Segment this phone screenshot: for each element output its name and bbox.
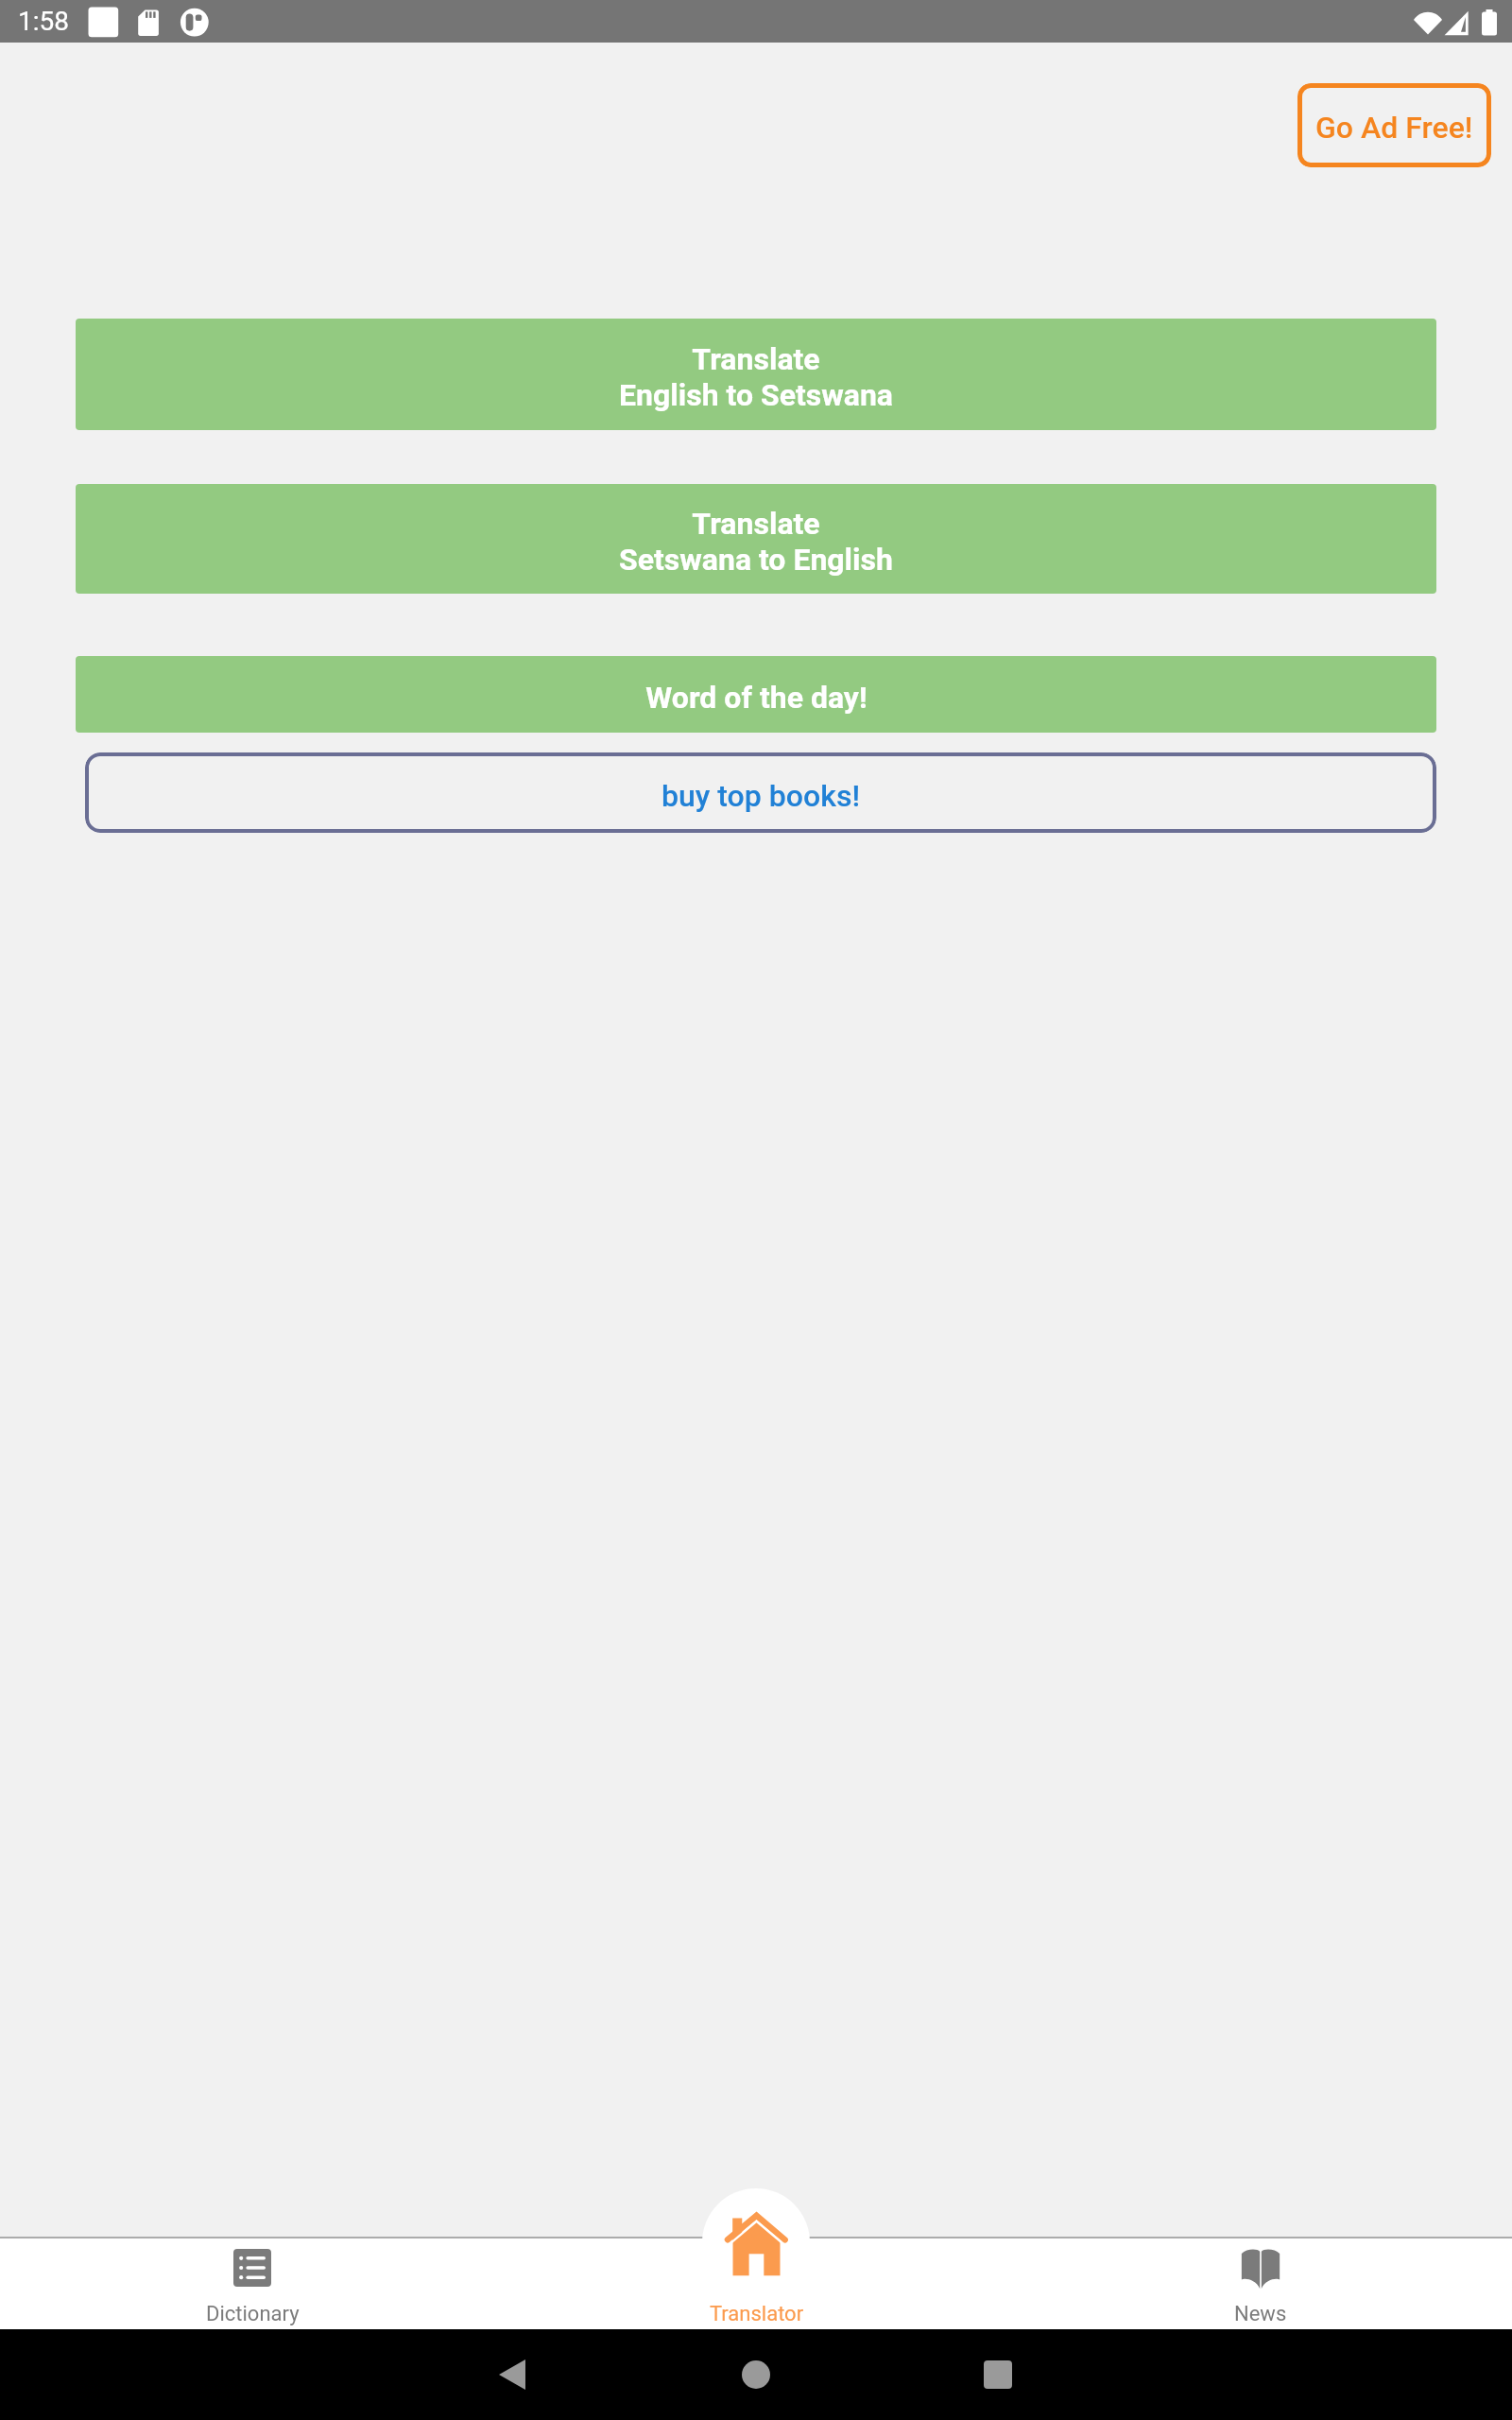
staticText: 1:58 bbox=[18, 6, 69, 37]
button[interactable]: News bbox=[1008, 2237, 1512, 2329]
staticText: News bbox=[1234, 2302, 1287, 2326]
button[interactable]: Go Ad Free! bbox=[1297, 83, 1491, 167]
staticText: Translate Setswana to English bbox=[619, 506, 893, 578]
staticText: buy top books! bbox=[661, 778, 860, 814]
staticText: Word of the day! bbox=[645, 680, 868, 716]
button[interactable]: Translator bbox=[702, 2188, 810, 2296]
button[interactable]: Translator bbox=[505, 2237, 1008, 2329]
button[interactable]: Translate Setswana to English bbox=[76, 484, 1436, 594]
staticText: Dictionary bbox=[206, 2302, 300, 2326]
staticText: Go Ad Free! bbox=[1315, 110, 1473, 146]
button[interactable]: Word of the day! bbox=[76, 656, 1436, 733]
button[interactable]: Dictionary bbox=[0, 2237, 505, 2329]
staticText: Translator bbox=[710, 2302, 804, 2326]
other: News bbox=[1241, 2248, 1280, 2289]
button[interactable]: Translate English to Setswana bbox=[76, 319, 1436, 430]
other: Dictionary bbox=[233, 2249, 271, 2287]
button[interactable]: buy top books! bbox=[85, 752, 1436, 833]
staticText: Translate English to Setswana bbox=[619, 341, 893, 413]
